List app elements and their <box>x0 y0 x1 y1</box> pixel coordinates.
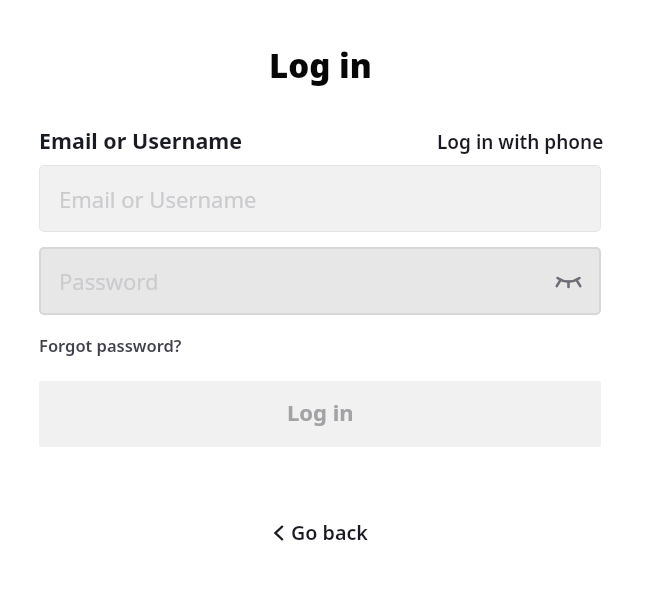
button[interactable]: Log in with phone <box>437 129 604 155</box>
staticText: Password <box>59 266 159 296</box>
staticText: Log in with phone <box>437 129 604 155</box>
staticText: Log in <box>269 43 372 88</box>
staticText: Email or Username <box>59 184 257 214</box>
button[interactable]: Go back <box>268 513 374 552</box>
button[interactable]: Show password <box>550 264 586 300</box>
staticText: Go back <box>291 519 368 546</box>
button[interactable]: Log in <box>39 381 601 447</box>
button[interactable]: Email or Username <box>39 165 601 232</box>
staticText: Forgot password? <box>39 334 182 356</box>
staticText: Email or Username <box>39 126 243 155</box>
staticText: Log in <box>287 397 354 427</box>
button[interactable]: Password <box>39 247 601 315</box>
button[interactable]: Forgot password? <box>39 334 182 356</box>
